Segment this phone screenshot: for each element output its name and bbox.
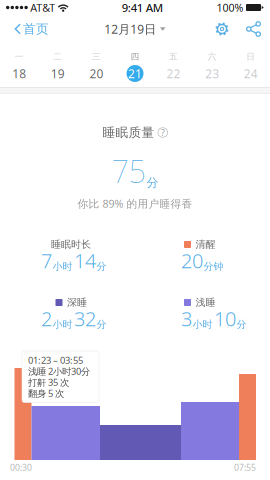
button[interactable]: 一	[0, 43, 39, 87]
staticText: 深睡	[67, 296, 87, 309]
staticText: 22	[167, 65, 181, 82]
staticText: 二	[53, 51, 62, 62]
staticText: 小时	[52, 318, 72, 331]
staticText: 100%	[216, 0, 243, 15]
staticText: 分	[146, 175, 158, 190]
staticText: 分	[96, 318, 106, 331]
button[interactable]: 四	[116, 43, 154, 87]
button[interactable]: 首页	[0, 15, 59, 43]
staticText: 00:30	[10, 462, 32, 473]
staticText: 五	[169, 51, 178, 62]
staticText: 3	[181, 305, 192, 332]
staticText: 清醒	[195, 238, 215, 251]
staticText: 首页	[23, 21, 49, 37]
staticText: 分	[96, 260, 106, 273]
staticText: 浅睡	[195, 296, 215, 309]
staticText: 浅睡 2小时30分	[28, 365, 90, 378]
staticText: 小时	[192, 318, 212, 331]
staticText: 07:55	[234, 462, 256, 473]
button[interactable]: 三	[77, 43, 116, 87]
staticText: 18	[12, 65, 26, 82]
staticText: 75	[111, 150, 145, 192]
button[interactable]: 二	[39, 43, 77, 87]
button[interactable]: Share	[244, 18, 264, 40]
staticText: 19	[51, 65, 65, 82]
staticText: 打鼾 35 次	[28, 376, 69, 389]
staticText: 一	[15, 51, 24, 62]
staticText: 24	[244, 65, 258, 82]
staticText: 翻身 5 次	[28, 387, 64, 400]
staticText: 32	[74, 305, 96, 332]
staticText: 14	[74, 247, 96, 274]
button[interactable]: 日	[231, 43, 270, 87]
staticText: 01:23 – 03:55	[28, 354, 83, 367]
button[interactable]: 五	[154, 43, 193, 87]
button[interactable]: Settings	[212, 18, 232, 40]
button[interactable]: 六	[193, 43, 231, 87]
staticText: 睡眠质量	[102, 124, 154, 140]
staticText: 你比 89% 的用户睡得香	[77, 196, 192, 211]
staticText: 10	[214, 305, 236, 332]
staticText: 12月19日	[104, 21, 156, 37]
staticText: AT&T	[30, 0, 55, 15]
button[interactable]: 12月19日	[98, 15, 172, 43]
staticText: 20	[89, 65, 103, 82]
staticText: 2	[41, 305, 52, 332]
staticText: 分	[236, 318, 246, 331]
staticText: 睡眠时长	[51, 238, 91, 251]
staticText: 20	[181, 247, 203, 274]
staticText: 小时	[52, 260, 72, 273]
staticText: 分钟	[203, 260, 223, 273]
staticText: 7	[41, 247, 52, 274]
staticText: 9:41 AM	[122, 0, 163, 15]
staticText: 日	[246, 51, 255, 62]
staticText: 六	[208, 51, 217, 62]
staticText: 23	[205, 65, 219, 82]
staticText: 21	[128, 65, 142, 82]
staticText: 四	[130, 51, 139, 62]
staticText: 三	[92, 51, 101, 62]
staticText: ?	[161, 126, 165, 139]
